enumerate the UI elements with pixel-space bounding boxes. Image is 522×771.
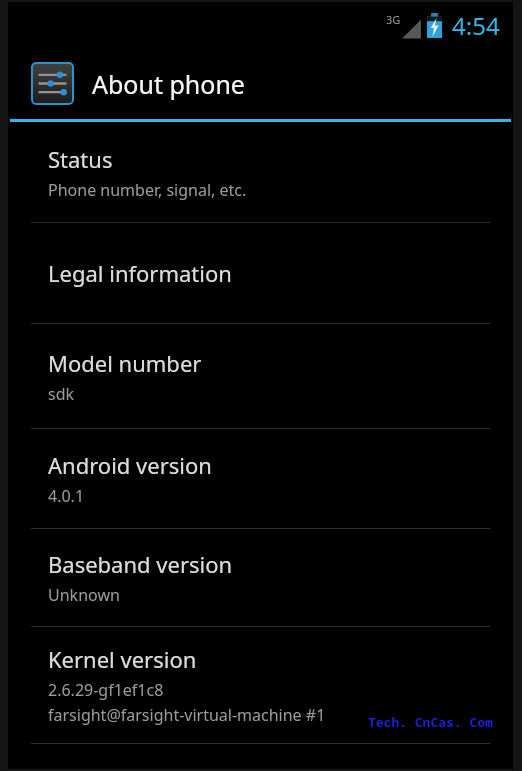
other: Settings xyxy=(31,62,74,105)
staticText: sdk xyxy=(48,383,75,405)
button[interactable]: Kernel version xyxy=(8,627,513,743)
staticText: Phone number, signal, etc. xyxy=(48,179,247,201)
staticText: farsight@farsight-virtual-machine #1 xyxy=(48,704,326,726)
staticText: Android version xyxy=(48,450,212,480)
staticText: 3G xyxy=(386,12,401,27)
staticText: Tech. CnCas. Com xyxy=(368,713,493,731)
staticText: 2.6.29-gf1ef1c8 xyxy=(48,679,164,701)
staticText: 4.0.1 xyxy=(48,485,85,507)
button[interactable]: Baseband version xyxy=(8,529,513,626)
staticText: 4:54 xyxy=(452,9,500,42)
staticText: Model number xyxy=(48,348,202,378)
button[interactable]: Android version xyxy=(8,429,513,528)
staticText: Status xyxy=(48,144,113,174)
staticText: Kernel version xyxy=(48,644,197,674)
staticText: Legal information xyxy=(48,258,232,288)
button[interactable]: Status xyxy=(8,122,513,222)
staticText: Baseband version xyxy=(48,549,233,579)
button[interactable]: Legal information xyxy=(8,223,513,323)
staticText: About phone xyxy=(92,67,245,101)
button[interactable]: Model number xyxy=(8,324,513,428)
button[interactable]: Settings xyxy=(8,49,513,122)
staticText: Unknown xyxy=(48,584,120,606)
